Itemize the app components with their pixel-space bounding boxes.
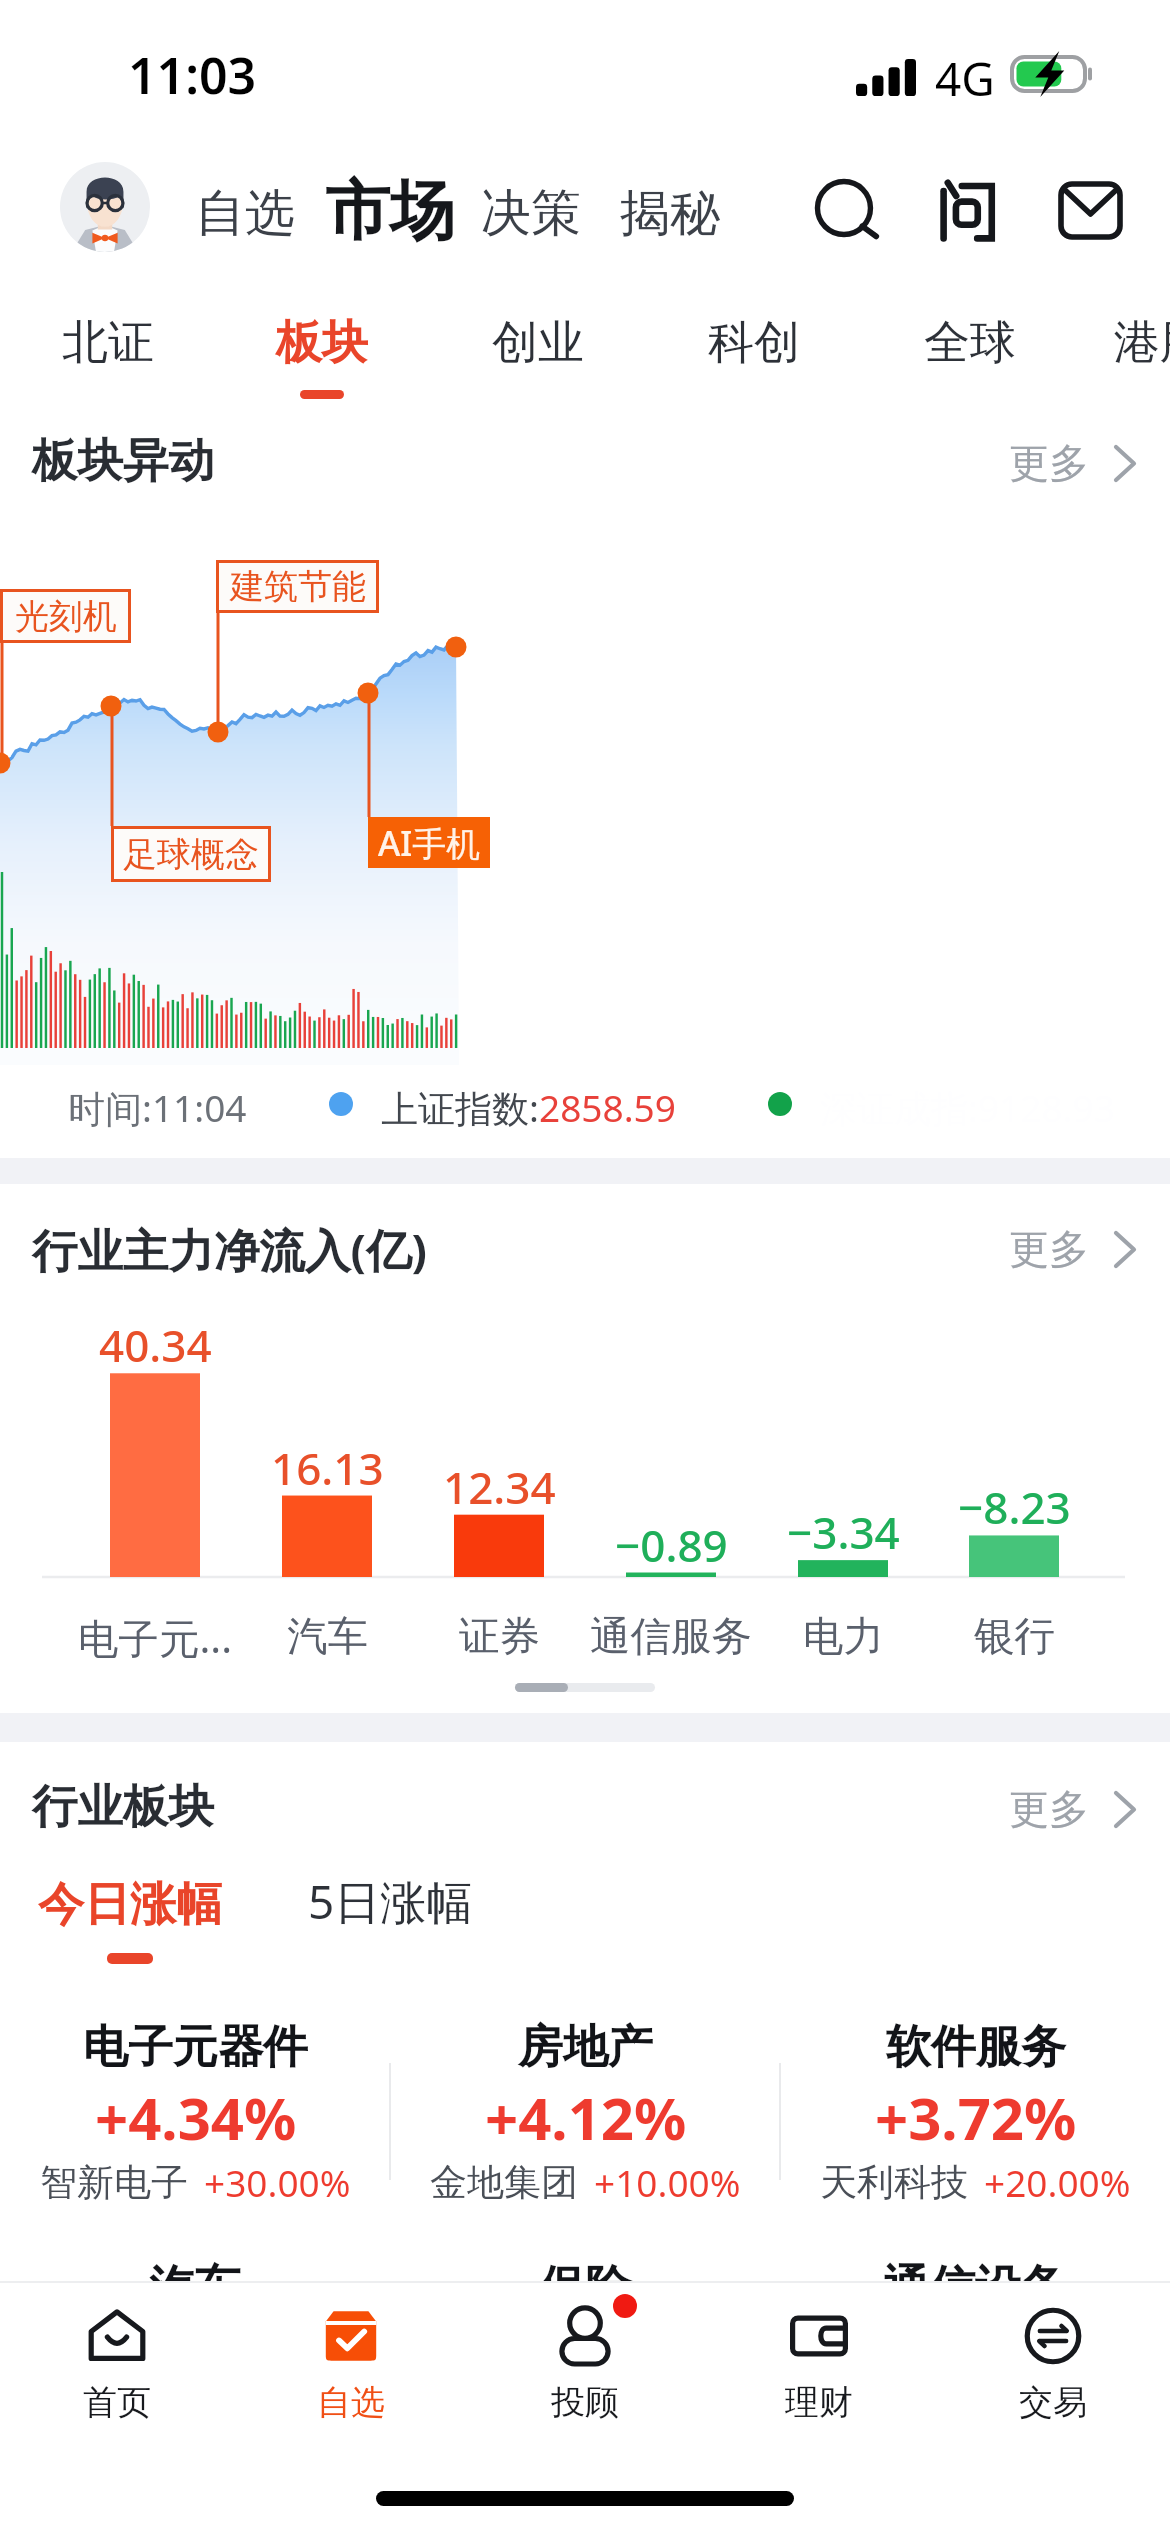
staticText: 行业主力净流入(亿) (32, 1218, 427, 1280)
staticText: 自选 (195, 182, 295, 245)
staticText: 电子元器件 (83, 2019, 308, 2076)
staticText: 12.34 (443, 1457, 556, 1509)
button[interactable]: 市场 (325, 170, 455, 252)
staticText: 板块异动 (32, 432, 214, 489)
staticText: 电力 (803, 1611, 884, 1662)
staticText: 软件服务 (886, 2019, 1066, 2076)
staticText: 5日涨幅 (308, 1870, 473, 1933)
staticText: 光刻机 (15, 595, 117, 638)
button[interactable]: 汽车 (0, 2259, 390, 2319)
staticText: 通信服务 (590, 1611, 752, 1662)
staticText: 港股 (1114, 314, 1170, 372)
staticText: 汽车 (149, 2259, 241, 2317)
staticText: 行业板块 (32, 1778, 214, 1835)
staticText: 全球 (924, 314, 1016, 372)
staticText: 今日涨幅 (38, 1876, 222, 1934)
staticText: 更多 (1009, 438, 1089, 488)
staticText: 房地产 (518, 2019, 653, 2076)
staticText: 揭秘 (620, 182, 720, 245)
staticText: 证券 (459, 1611, 540, 1662)
button[interactable]: Messages (1042, 162, 1138, 258)
staticText: 更多 (1009, 1224, 1089, 1274)
staticText: +10.00% (594, 2157, 741, 2207)
staticText: 交易 (1019, 2381, 1087, 2424)
button[interactable]: 软件服务 (780, 2019, 1170, 2229)
button[interactable]: 通信设备 (780, 2259, 1170, 2319)
staticText: −0.89 (615, 1515, 728, 1567)
staticText: 市场 (325, 170, 455, 252)
staticText: 理财 (785, 2381, 853, 2424)
staticText: 创业 (492, 314, 584, 372)
staticText: 决策 (481, 182, 581, 245)
staticText: 16.13 (271, 1438, 384, 1490)
staticText: 智新电子 (40, 2159, 188, 2206)
staticText: +4.12% (485, 2078, 687, 2157)
button[interactable]: 电子元器件 (0, 2019, 390, 2229)
staticText: +20.00% (984, 2157, 1131, 2207)
button[interactable]: 更多 (992, 419, 1152, 507)
button[interactable]: 自选 (234, 2283, 468, 2443)
button[interactable]: 板块 (214, 290, 430, 400)
staticText: +30.00% (204, 2157, 351, 2207)
staticText: 金地集团 (430, 2159, 578, 2206)
button[interactable]: 科创 (646, 290, 862, 400)
button[interactable]: 北证 (0, 290, 216, 400)
staticText: 首页 (83, 2381, 151, 2424)
staticText: 自选 (317, 2381, 385, 2424)
staticText: 11:03 (128, 41, 257, 109)
staticText: 投顾 (551, 2381, 619, 2424)
staticText: −3.34 (787, 1502, 900, 1554)
staticText: AI手机 (378, 820, 481, 866)
button[interactable]: 今日涨幅 (38, 1876, 222, 1964)
button[interactable]: Ask (918, 162, 1014, 258)
button[interactable]: 理财 (702, 2283, 936, 2443)
button[interactable]: Profile (60, 162, 150, 252)
staticText: 时间:11:04 (68, 1082, 247, 1133)
button[interactable]: 港股 (1052, 290, 1170, 400)
staticText: 40.34 (99, 1315, 212, 1367)
button[interactable]: 交易 (936, 2283, 1170, 2443)
button[interactable]: 首页 (0, 2283, 234, 2443)
staticText: 2858.59 (539, 1082, 676, 1132)
button[interactable]: 创业 (430, 290, 646, 400)
staticText: 足球概念 (123, 833, 259, 876)
button[interactable]: 保险 (390, 2259, 780, 2319)
staticText: 银行 (974, 1611, 1055, 1662)
staticText: 通信设备 (883, 2259, 1067, 2317)
button[interactable]: 揭秘 (620, 182, 720, 245)
button[interactable]: 投顾 (468, 2283, 702, 2443)
staticText: 板块 (276, 314, 368, 372)
staticText: 电子元... (78, 1610, 233, 1662)
button[interactable]: Search (800, 162, 896, 258)
button[interactable]: 全球 (862, 290, 1078, 400)
staticText: 科创 (708, 314, 800, 372)
staticText: −8.23 (958, 1477, 1071, 1529)
staticText: 4G (935, 47, 995, 110)
button[interactable]: 决策 (481, 182, 581, 245)
button[interactable]: 房地产 (390, 2019, 780, 2229)
button[interactable]: 5日涨幅 (308, 1870, 473, 1933)
staticText: 保险 (539, 2259, 631, 2317)
staticText: +4.34% (95, 2078, 297, 2157)
staticText: 更多 (1009, 1784, 1089, 1834)
staticText: 建筑节能 (230, 565, 366, 608)
staticText: 天利科技 (820, 2159, 968, 2206)
staticText: 汽车 (287, 1611, 368, 1662)
staticText: +3.72% (875, 2078, 1077, 2157)
button[interactable]: 更多 (992, 1765, 1152, 1853)
button[interactable]: 自选 (195, 182, 295, 245)
button[interactable]: 更多 (992, 1205, 1152, 1293)
staticText: 上证指数: (381, 1082, 539, 1133)
staticText: 北证 (62, 314, 154, 372)
